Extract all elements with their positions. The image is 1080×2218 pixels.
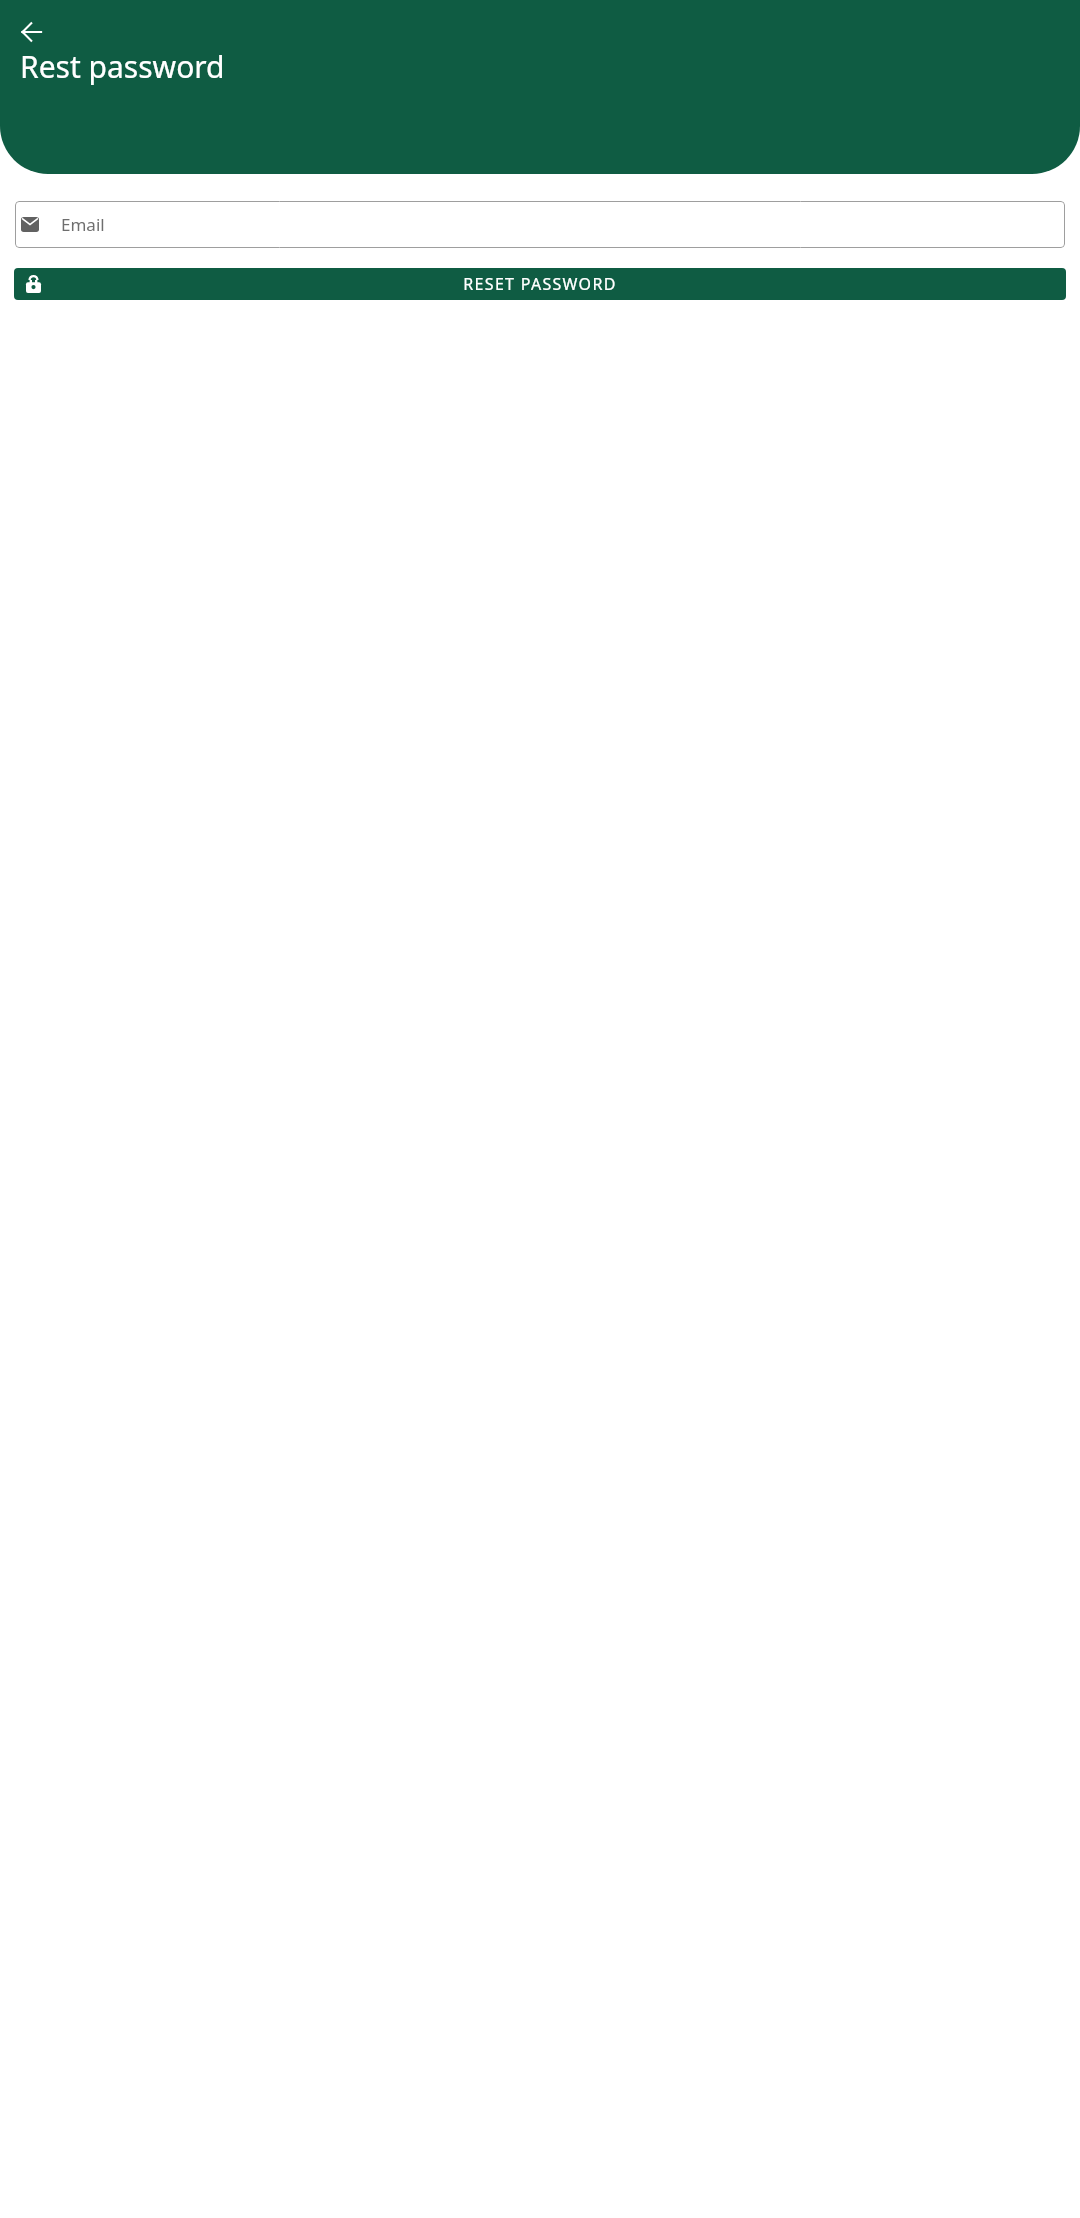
staticText: Rest password xyxy=(20,46,225,87)
staticText: RESET PASSWORD xyxy=(463,273,617,295)
button[interactable]: Email xyxy=(15,201,1065,248)
button[interactable]: RESET PASSWORD xyxy=(14,268,1066,300)
button[interactable]: Back xyxy=(8,8,56,56)
staticText: Email xyxy=(61,213,105,236)
